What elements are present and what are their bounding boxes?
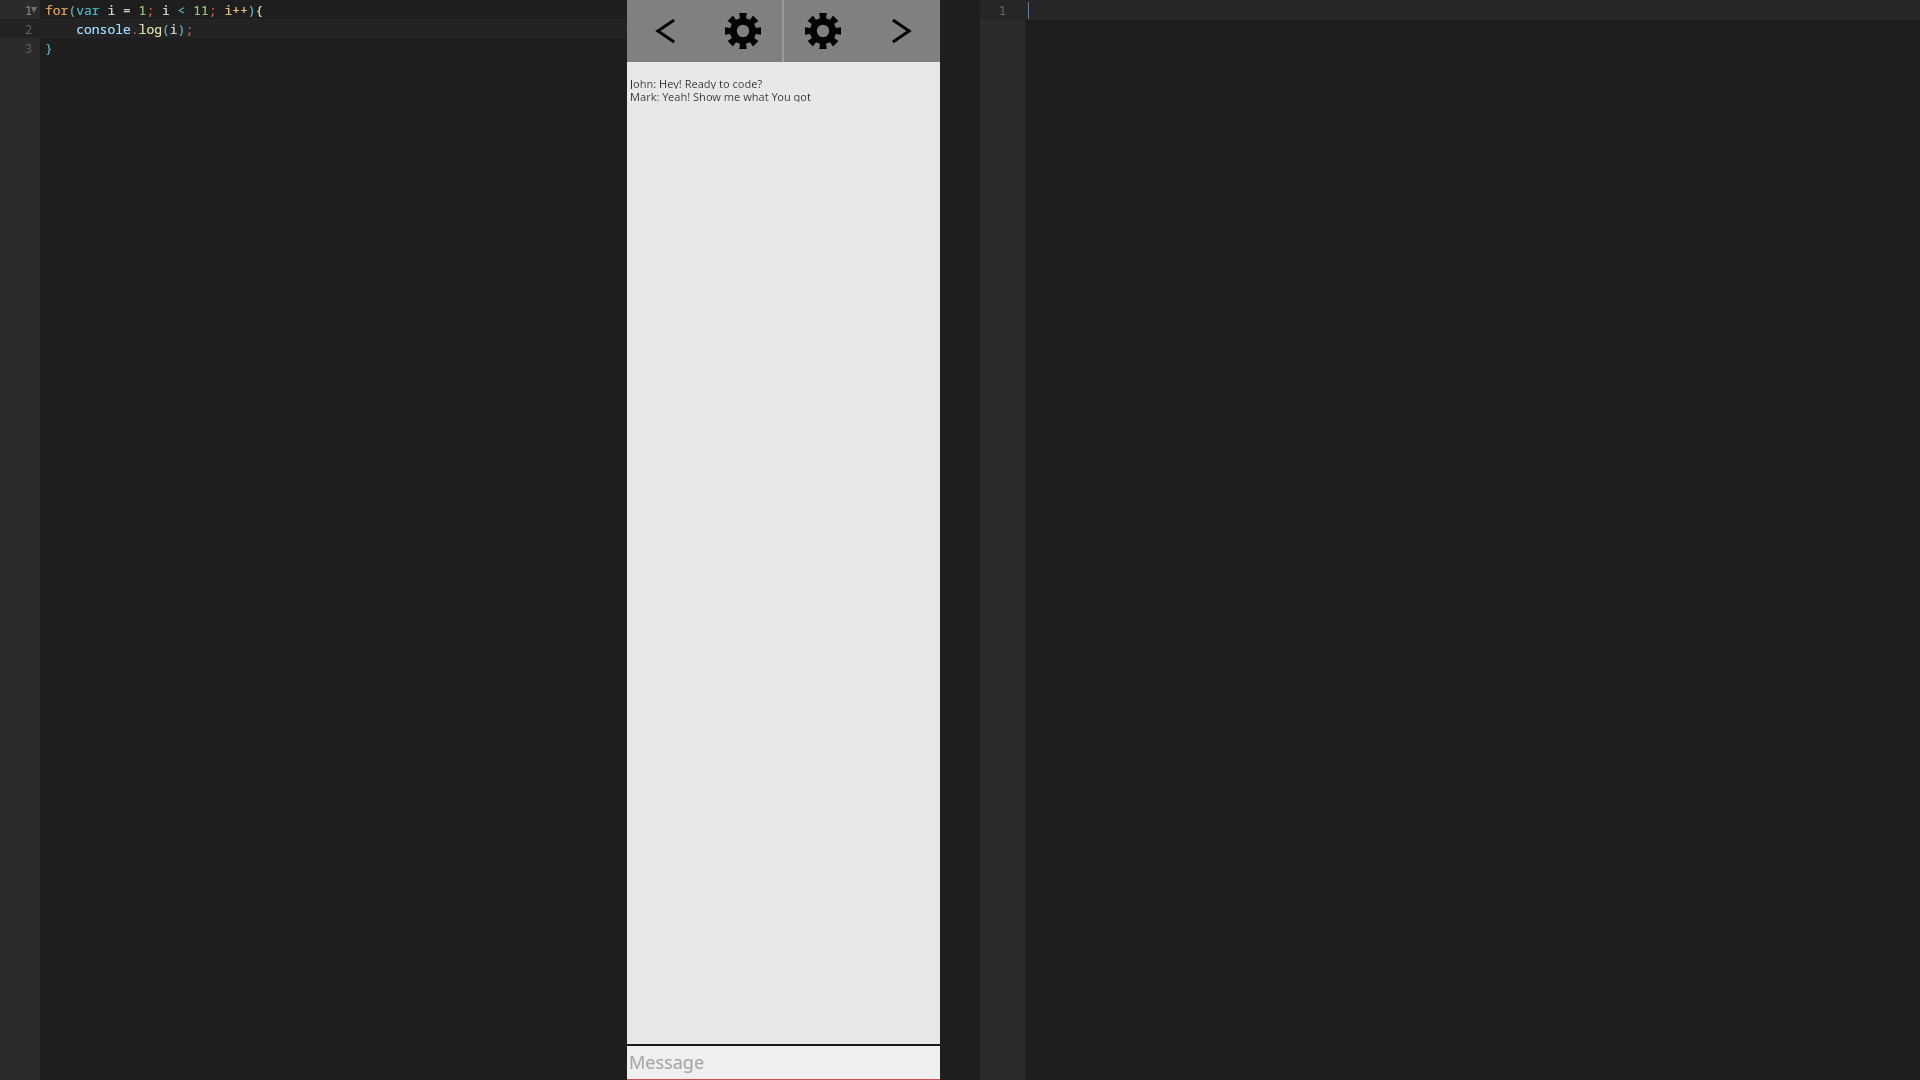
staticText: 3 (25, 40, 33, 56)
button[interactable]: Settings (784, 0, 862, 62)
staticText: for(var i = 1; i < 11; i++){ (45, 1, 264, 19)
staticText: Mark: Yeah! Show me what You got (630, 89, 811, 102)
button[interactable]: Settings (704, 0, 782, 62)
staticText: console.log(i); (45, 20, 194, 38)
staticText: 1 (999, 2, 1007, 18)
button[interactable]: Message (627, 1046, 940, 1079)
staticText: Message (629, 1050, 705, 1075)
button[interactable]: Forward (862, 0, 940, 62)
staticText: } (45, 39, 53, 57)
staticText: John: Hey! Ready to code? (630, 76, 763, 89)
staticText: 1 (25, 2, 33, 18)
staticText: 2 (25, 21, 33, 37)
button[interactable]: Back (627, 0, 704, 62)
